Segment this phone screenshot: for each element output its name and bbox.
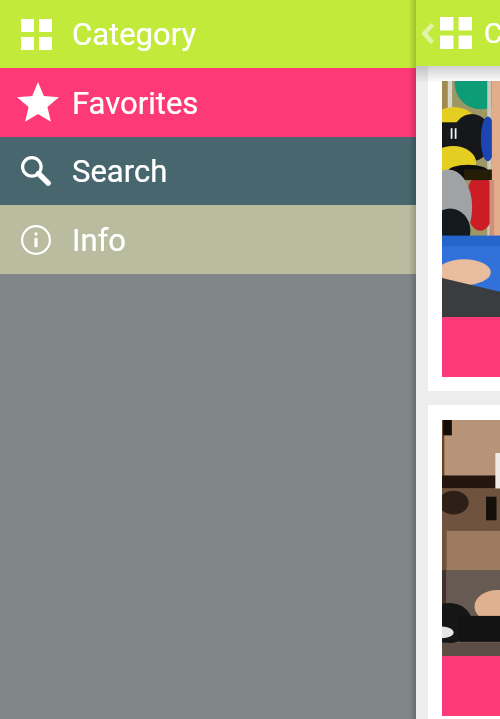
staticText: Favorites [72, 85, 199, 121]
button[interactable]: Search [0, 137, 416, 205]
staticText: Categories [484, 17, 500, 50]
button[interactable]: Info [0, 205, 416, 274]
button[interactable]: Back [416, 0, 439, 66]
button[interactable] [428, 66, 500, 391]
staticText: Category [72, 16, 197, 52]
staticText: Info [72, 222, 127, 258]
staticText: Search [72, 153, 168, 189]
button[interactable]: Categories [439, 0, 473, 66]
button[interactable]: Category [0, 0, 416, 68]
button[interactable] [428, 405, 500, 719]
button[interactable]: Favorites [0, 68, 416, 137]
